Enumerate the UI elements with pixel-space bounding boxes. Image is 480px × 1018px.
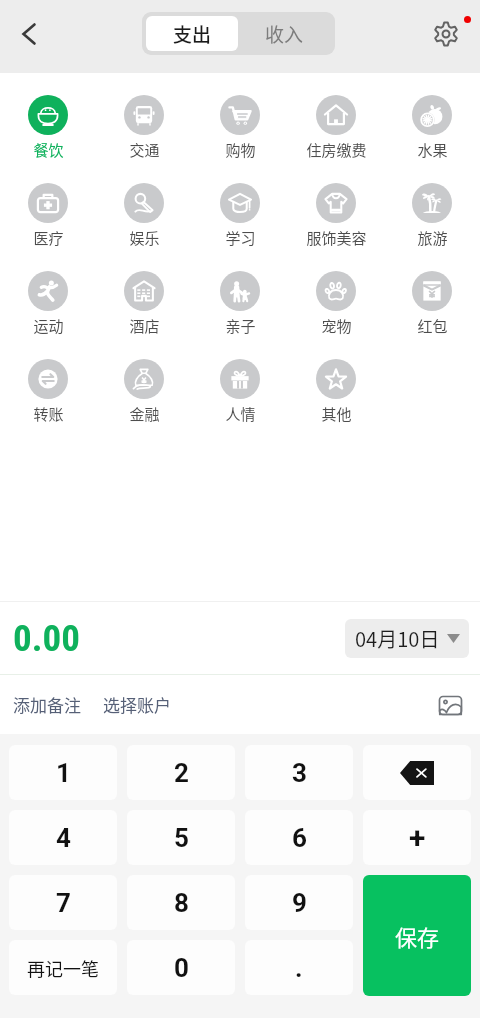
button[interactable]: Backspace [363,745,471,800]
button[interactable]: 金融 [96,359,192,447]
button[interactable]: 04月10日 [345,619,469,658]
staticText: 再记一笔 [27,955,99,981]
staticText: 酒店 [129,315,160,337]
button[interactable]: 2 [127,745,235,800]
staticText: 0 [174,953,189,983]
button[interactable]: 其他 [288,359,384,447]
button[interactable]: 添加备注 [0,684,89,725]
button[interactable]: 选择账户 [89,684,179,725]
staticText: 餐饮 [33,139,64,161]
staticText: 学习 [225,227,256,249]
button[interactable]: Settings [421,9,471,59]
button[interactable]: + [363,810,471,865]
staticText: 交通 [129,139,160,161]
button[interactable]: 转账 [0,359,96,447]
staticText: 医疗 [33,227,64,249]
staticText: 旅游 [417,227,448,249]
staticText: 宠物 [321,315,352,337]
staticText: 其他 [321,403,352,425]
button[interactable]: 红包 [384,271,480,359]
button[interactable]: 6 [245,810,353,865]
staticText: 水果 [417,139,448,161]
staticText: 8 [174,888,189,918]
button[interactable]: 旅游 [384,183,480,271]
staticText: 收入 [265,20,304,48]
button[interactable]: 3 [245,745,353,800]
staticText: 2 [174,758,189,788]
button[interactable]: 服饰美容 [288,183,384,271]
button[interactable]: 住房缴费 [288,95,384,183]
button[interactable]: 保存 [363,875,471,996]
staticText: 购物 [225,139,256,161]
button[interactable]: 餐饮 [0,95,96,183]
button[interactable]: 0 [127,940,235,995]
staticText: 服饰美容 [306,227,367,249]
button[interactable]: 宠物 [288,271,384,359]
button[interactable]: 8 [127,875,235,930]
button[interactable]: 亲子 [192,271,288,359]
button[interactable]: 5 [127,810,235,865]
button[interactable]: 医疗 [0,183,96,271]
button[interactable]: Back [5,10,53,58]
staticText: 转账 [33,403,64,425]
staticText: 7 [56,888,71,918]
staticText: 支出 [173,20,212,48]
button[interactable]: 学习 [192,183,288,271]
button[interactable]: 9 [245,875,353,930]
staticText: 6 [292,823,307,853]
button[interactable]: 购物 [192,95,288,183]
staticText: 9 [292,888,307,918]
staticText: 0.00 [13,617,80,660]
button[interactable]: 支出 [146,16,238,51]
button[interactable]: 收入 [238,16,331,51]
staticText: 添加备注 [13,692,81,717]
staticText: 住房缴费 [306,139,367,161]
staticText: 1 [56,758,71,788]
button[interactable]: 水果 [384,95,480,183]
button[interactable]: 1 [9,745,117,800]
staticText: 04月10日 [355,624,440,653]
staticText: 娱乐 [129,227,160,249]
staticText: 亲子 [225,315,256,337]
staticText: . [295,953,303,983]
staticText: 运动 [33,315,64,337]
staticText: 红包 [417,315,448,337]
staticText: 选择账户 [103,692,171,717]
button[interactable]: . [245,940,353,995]
button[interactable]: 再记一笔 [9,940,117,995]
staticText: 3 [292,758,307,788]
button[interactable]: 人情 [192,359,288,447]
staticText: 金融 [129,403,160,425]
staticText: 保存 [395,920,440,952]
staticText: 4 [56,823,71,853]
button[interactable]: 7 [9,875,117,930]
button[interactable]: 4 [9,810,117,865]
button[interactable]: Add photo [432,687,468,723]
staticText: + [409,820,426,855]
button[interactable]: 交通 [96,95,192,183]
button[interactable]: 运动 [0,271,96,359]
staticText: 人情 [225,403,256,425]
button[interactable]: 酒店 [96,271,192,359]
staticText: 5 [174,823,189,853]
button[interactable]: 娱乐 [96,183,192,271]
